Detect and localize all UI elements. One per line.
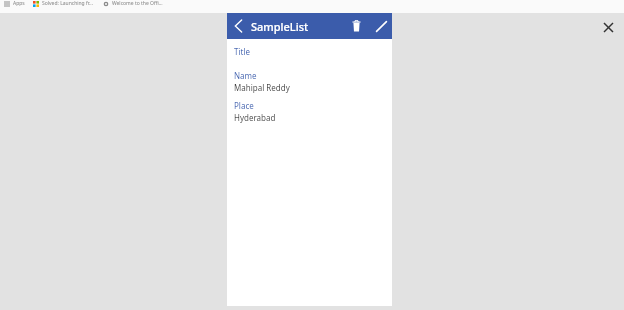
staticText: Welcome to the Offi... [112, 0, 163, 7]
staticText: Hyderabad [234, 112, 276, 123]
staticText: SampleList [251, 19, 309, 34]
staticText: Mahipal Reddy [234, 82, 290, 93]
staticText: Place [234, 100, 254, 111]
staticText: Name [234, 70, 257, 81]
button[interactable]: Back [227, 13, 249, 39]
staticText: Solved: Launching fr... [42, 0, 93, 7]
button[interactable]: Edit [371, 13, 392, 39]
button[interactable]: Delete [345, 13, 367, 39]
staticText: Title [234, 46, 250, 57]
staticText: Apps [13, 0, 25, 7]
button[interactable]: Close [597, 16, 619, 38]
